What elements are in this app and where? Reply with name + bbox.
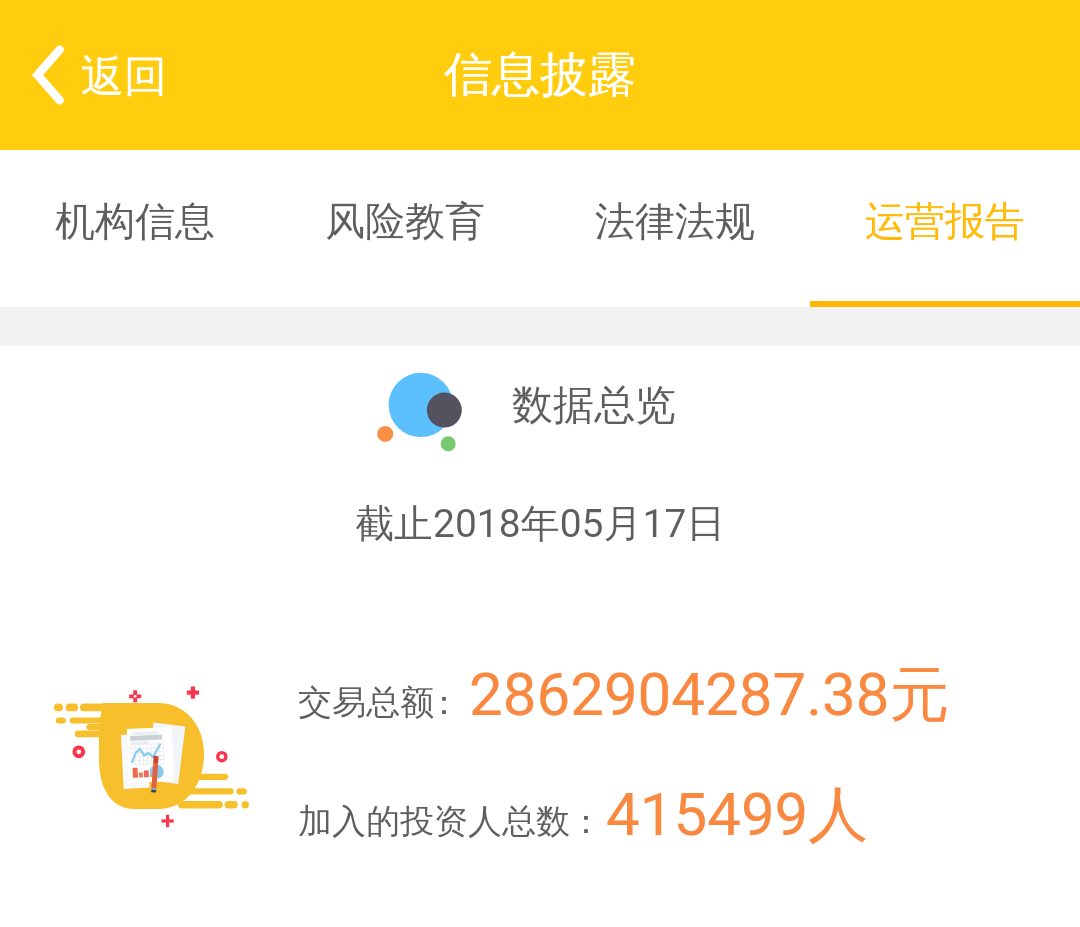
button[interactable]: 法律法规 <box>540 150 810 307</box>
staticText: 法律法规 <box>595 196 755 246</box>
staticText: 运营报告 <box>865 196 1025 246</box>
staticText: 交易总额 <box>298 681 434 724</box>
button[interactable]: 机构信息 <box>0 150 270 307</box>
staticText: 截止2018年05月17日 <box>355 499 726 548</box>
other: Back <box>28 45 61 105</box>
staticText: 返回 <box>81 50 167 104</box>
staticText: 风险教育 <box>325 196 485 246</box>
staticText: 机构信息 <box>55 196 215 246</box>
staticText: 数据总览 <box>512 380 676 432</box>
staticText: 加入的投资人总数 <box>298 800 570 843</box>
staticText: ： <box>427 681 461 724</box>
staticText: 415499人 <box>606 777 869 853</box>
staticText: 2862904287.38元 <box>469 657 950 733</box>
button[interactable]: Back <box>0 31 189 119</box>
button[interactable]: 风险教育 <box>270 150 540 307</box>
staticText: ： <box>569 800 603 843</box>
button[interactable]: 运营报告 <box>810 150 1080 307</box>
staticText: 信息披露 <box>444 45 636 105</box>
